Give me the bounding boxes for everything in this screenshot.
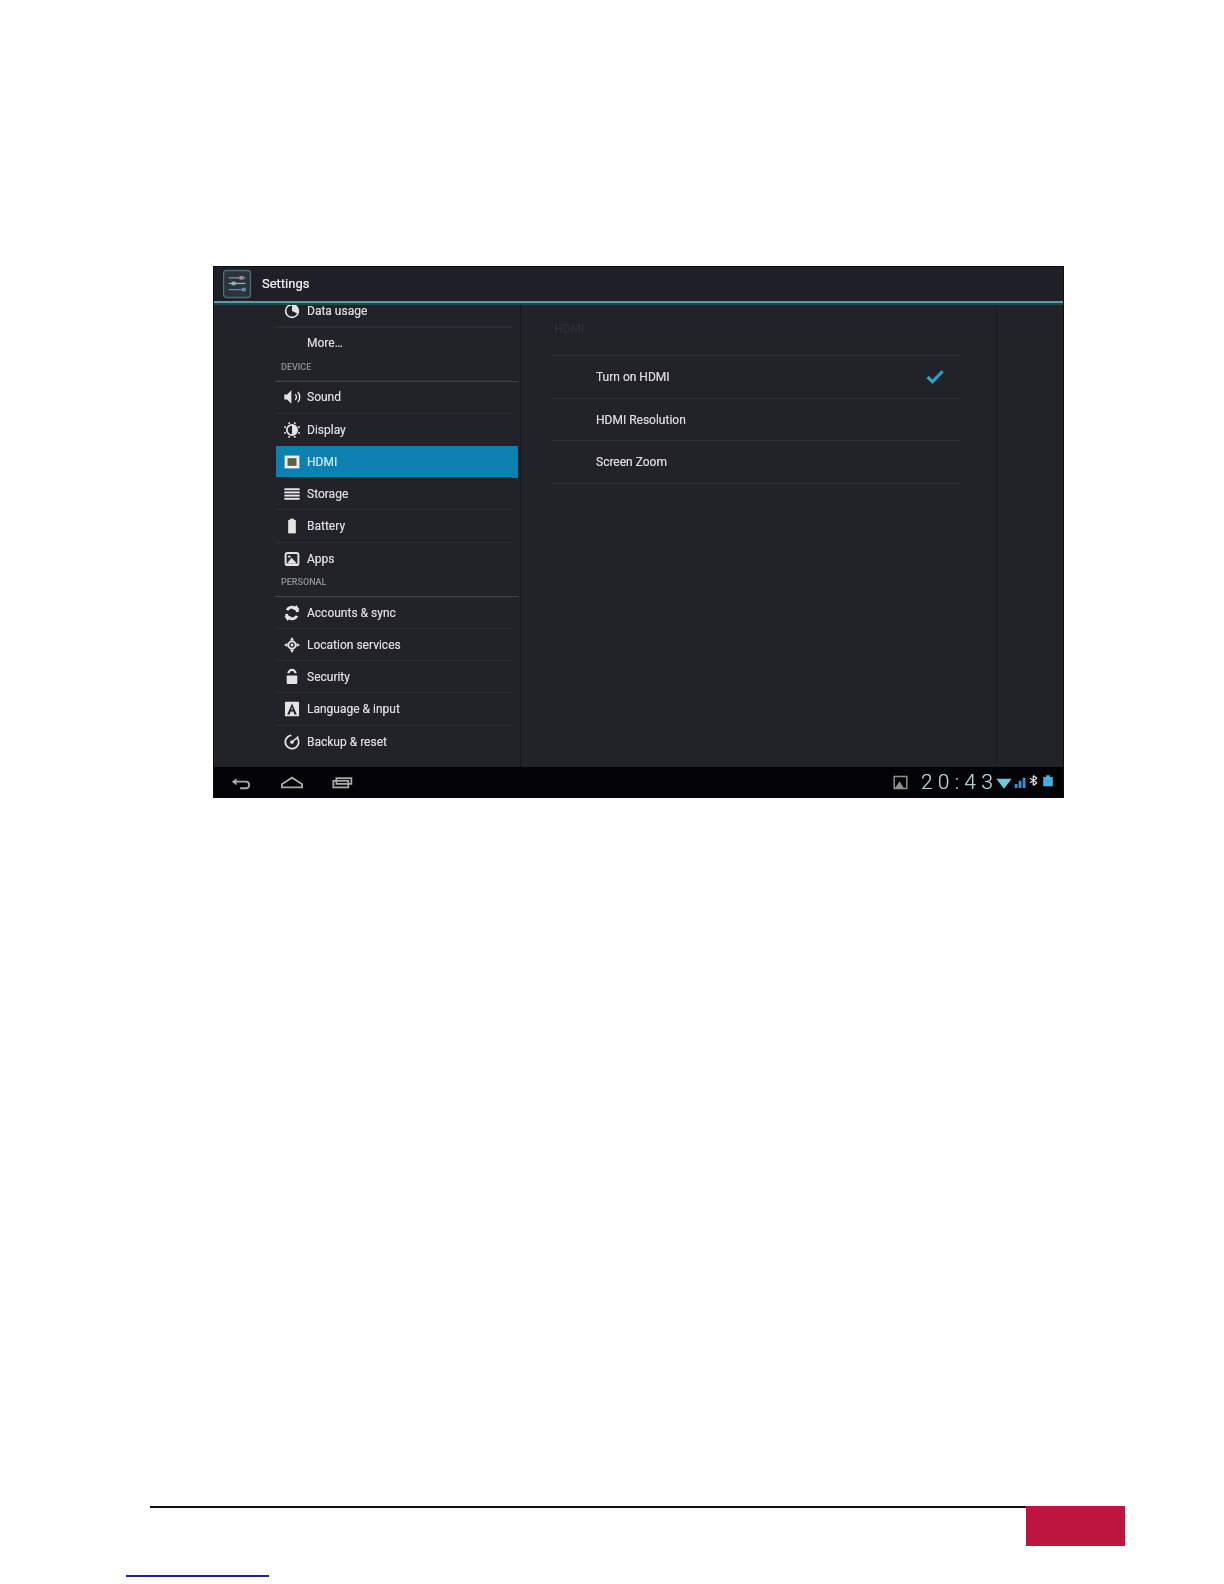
staticText: More… [307,336,343,350]
staticText: Language & input [307,702,400,716]
staticText: DEVICE [281,362,312,373]
staticText: Settings [262,276,310,291]
button[interactable]: Backup & reset [276,726,518,758]
button[interactable]: Screen Zoom [552,441,961,483]
staticText: Display [307,423,346,437]
button[interactable]: Recent apps [332,772,354,794]
staticText: Turn on HDMI [596,370,670,384]
button[interactable]: Language & input [276,693,518,725]
staticText: Sound [307,390,341,404]
button[interactable]: Data usage [276,305,518,327]
staticText: HDMI Resolution [596,413,686,427]
button[interactable]: HDMI Resolution [552,399,961,441]
button[interactable]: Storage [276,478,518,510]
button[interactable]: Home [281,772,303,794]
staticText: HDMI [307,455,338,469]
staticText: HDMI [554,322,585,336]
button[interactable]: More… [276,327,518,359]
staticText: 20:43 [921,770,999,795]
button[interactable]: Back [230,772,252,794]
staticText: Location services [307,638,401,652]
staticText: Apps [307,552,335,566]
staticText: Data usage [307,305,368,318]
button[interactable]: Security [276,661,518,693]
staticText: PERSONAL [281,577,327,588]
other: Settings app icon [223,270,251,298]
button[interactable]: Sound [276,381,518,413]
button[interactable]: Turn on HDMI [552,356,961,398]
button[interactable]: Accounts & sync [276,597,518,629]
button[interactable]: Display [276,414,518,446]
button[interactable]: Battery [276,510,518,542]
staticText: Storage [307,487,349,501]
staticText: Battery [307,519,346,533]
staticText: Security [307,670,350,684]
staticText: Screen Zoom [596,455,667,469]
staticText: Backup & reset [307,735,387,749]
button[interactable]: Settings app icon [213,266,1064,301]
button[interactable]: Apps [276,543,518,575]
button[interactable]: Location services [276,629,518,661]
staticText: Accounts & sync [307,606,396,620]
button[interactable]: HDMI [276,446,518,478]
